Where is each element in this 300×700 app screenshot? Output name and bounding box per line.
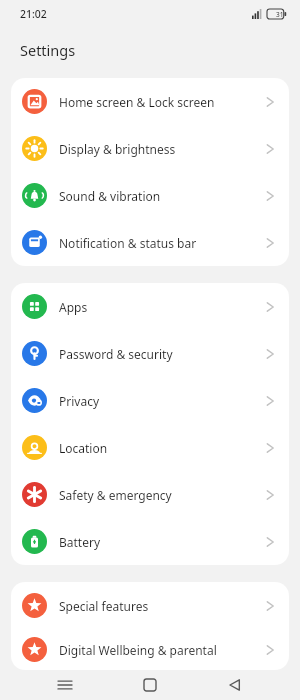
button[interactable]: Home screen & Lock screen bbox=[11, 78, 289, 125]
button[interactable]: Password & security bbox=[11, 330, 289, 377]
button[interactable]: Digital Wellbeing & parental bbox=[11, 629, 289, 670]
staticText: Safety & emergency bbox=[59, 487, 266, 503]
button[interactable]: Privacy bbox=[11, 377, 289, 424]
staticText: Sound & vibration bbox=[59, 188, 266, 204]
staticText: Display & brightness bbox=[59, 141, 266, 157]
button[interactable]: Back bbox=[215, 670, 255, 700]
button[interactable]: Recent apps bbox=[45, 670, 85, 700]
staticText: Settings bbox=[20, 40, 76, 60]
button[interactable]: Home bbox=[130, 670, 170, 700]
button[interactable]: Notification & status bar bbox=[11, 219, 289, 266]
button[interactable]: Apps bbox=[11, 283, 289, 330]
button[interactable]: Sound & vibration bbox=[11, 172, 289, 219]
staticText: Battery bbox=[59, 534, 266, 550]
button[interactable]: Safety & emergency bbox=[11, 471, 289, 518]
staticText: Password & security bbox=[59, 346, 266, 362]
staticText: Special features bbox=[59, 598, 266, 614]
button[interactable]: Location bbox=[11, 424, 289, 471]
staticText: Location bbox=[59, 440, 266, 456]
button[interactable]: Special features bbox=[11, 582, 289, 629]
staticText: Home screen & Lock screen bbox=[59, 94, 266, 110]
staticText: 21:02 bbox=[20, 7, 47, 21]
staticText: Notification & status bar bbox=[59, 235, 266, 251]
staticText: Apps bbox=[59, 299, 266, 315]
staticText: Digital Wellbeing & parental bbox=[59, 642, 266, 658]
staticText: 31 bbox=[276, 10, 284, 19]
staticText: Privacy bbox=[59, 393, 266, 409]
button[interactable]: Battery bbox=[11, 518, 289, 565]
button[interactable]: Display & brightness bbox=[11, 125, 289, 172]
